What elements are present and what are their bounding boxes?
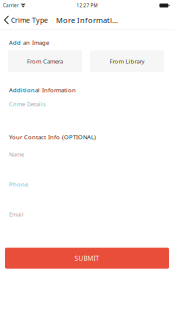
staticText: Additional Information	[9, 86, 76, 94]
button[interactable]: From Library	[90, 50, 164, 72]
staticText: From Library	[109, 57, 144, 65]
staticText: Add an Image	[9, 39, 49, 47]
staticText: Crime Details	[9, 100, 46, 108]
staticText: Your Contact Info (OPTIONAL)	[9, 133, 96, 141]
button[interactable]: SUBMIT	[5, 248, 169, 269]
staticText: SUBMIT	[74, 254, 99, 262]
staticText: Carrier	[3, 2, 19, 9]
staticText: Email	[9, 210, 24, 218]
staticText: From Camera	[27, 57, 63, 65]
button[interactable]: From Camera	[8, 50, 82, 72]
staticText: Crime Type	[11, 15, 48, 25]
staticText: Name	[9, 150, 24, 158]
staticText: Phone	[9, 180, 28, 188]
button[interactable]: Crime Type	[0, 11, 50, 29]
staticText: 12:27 PM	[76, 2, 97, 9]
staticText: More Informati...	[56, 15, 118, 25]
